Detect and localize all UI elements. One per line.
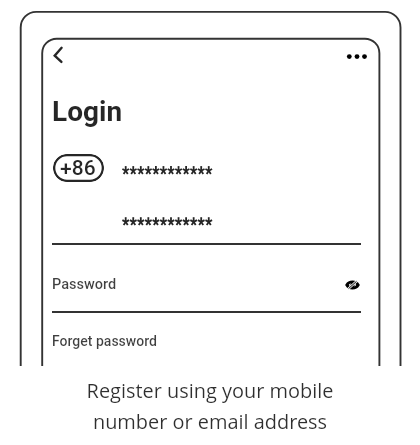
button[interactable]: More options	[339, 45, 373, 69]
staticText: Password	[52, 276, 117, 293]
button[interactable]: Back	[47, 43, 71, 67]
button[interactable]: Show password	[341, 273, 365, 297]
staticText: +86	[60, 156, 96, 181]
staticText: Login	[52, 95, 123, 128]
button[interactable]: +86	[53, 154, 104, 182]
staticText: Register using your mobile number or ema…	[0, 377, 420, 435]
button[interactable]: Forget password	[52, 333, 157, 349]
